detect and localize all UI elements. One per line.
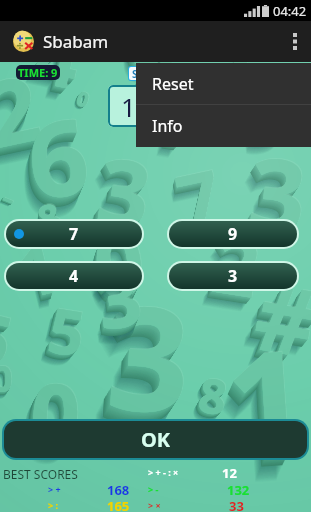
staticText: 3 (228, 265, 238, 287)
staticText: Info (152, 115, 183, 137)
staticText: S (132, 67, 138, 80)
button[interactable]: OK (4, 421, 307, 458)
staticText: > : (48, 499, 59, 511)
button[interactable]: 9 (169, 221, 297, 247)
staticText: OK (141, 426, 171, 453)
staticText: 04:42 (273, 2, 307, 20)
staticText: > - (148, 483, 159, 495)
staticText: BEST SCORES (3, 466, 78, 482)
staticText: 132 (227, 481, 250, 499)
button[interactable]: Info (136, 105, 311, 147)
staticText: Reset (152, 73, 194, 95)
staticText: > × (148, 499, 161, 511)
staticText: 12 (222, 464, 237, 482)
button[interactable]: Reset (136, 63, 311, 104)
button[interactable]: 3 (169, 263, 297, 289)
staticText: 33 (229, 497, 244, 512)
staticText: > + - : × (148, 466, 179, 478)
staticText: 165 (107, 497, 130, 512)
button[interactable]: 4 (6, 263, 142, 289)
button[interactable]: More options (279, 21, 311, 62)
staticText: 9 (228, 223, 238, 245)
staticText: 14 (121, 89, 151, 124)
staticText: Sbabam (43, 30, 109, 53)
staticText: TIME: 9 (18, 65, 58, 80)
button[interactable]: 7 (6, 221, 142, 247)
staticText: 168 (107, 481, 130, 499)
staticText: 7 (69, 223, 79, 245)
staticText: 4 (69, 265, 79, 287)
staticText: > + (48, 483, 61, 495)
